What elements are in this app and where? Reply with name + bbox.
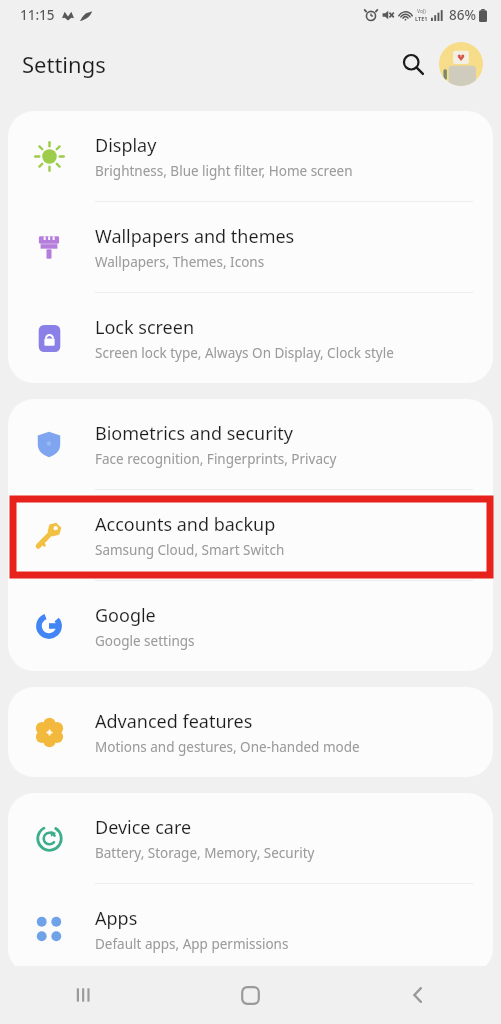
- staticText: Motions and gestures, One-handed mode: [95, 738, 360, 756]
- staticText: Samsung Cloud, Smart Switch: [95, 541, 285, 559]
- staticText: Wallpapers, Themes, Icons: [95, 253, 265, 271]
- staticText: Biometrics and security: [95, 421, 293, 446]
- staticText: LTE1: [415, 15, 428, 22]
- staticText: Battery, Storage, Memory, Security: [95, 844, 315, 862]
- button[interactable]: Apps: [8, 884, 493, 974]
- staticText: Wallpapers and themes: [95, 224, 295, 249]
- staticText: VoJ): [417, 8, 426, 15]
- staticText: Accounts and backup: [95, 512, 276, 537]
- button[interactable]: Recents: [0, 966, 167, 1024]
- button[interactable]: Account: [439, 42, 483, 86]
- button[interactable]: Advanced features: [8, 687, 493, 777]
- button[interactable]: Back: [334, 966, 501, 1024]
- button[interactable]: Search: [391, 42, 435, 86]
- staticText: Google: [95, 603, 156, 628]
- button[interactable]: Google: [8, 581, 493, 671]
- staticText: Device care: [95, 815, 192, 840]
- staticText: Lock screen: [95, 315, 195, 340]
- staticText: Screen lock type, Always On Display, Clo…: [95, 344, 394, 362]
- button[interactable]: Lock screen: [8, 293, 493, 383]
- staticText: Google settings: [95, 632, 195, 650]
- staticText: 86%: [449, 6, 476, 24]
- staticText: Default apps, App permissions: [95, 935, 289, 953]
- staticText: Settings: [22, 49, 106, 79]
- staticText: Face recognition, Fingerprints, Privacy: [95, 450, 337, 468]
- button[interactable]: Accounts and backup: [8, 490, 493, 580]
- button[interactable]: Device care: [8, 793, 493, 883]
- button[interactable]: Home: [167, 966, 334, 1024]
- staticText: Advanced features: [95, 709, 253, 734]
- staticText: Display: [95, 133, 157, 158]
- staticText: Brightness, Blue light filter, Home scre…: [95, 162, 353, 180]
- button[interactable]: Biometrics and security: [8, 399, 493, 489]
- button[interactable]: Wallpapers and themes: [8, 202, 493, 292]
- button[interactable]: Display: [8, 111, 493, 201]
- staticText: 11:15: [20, 6, 55, 24]
- staticText: Apps: [95, 906, 138, 931]
